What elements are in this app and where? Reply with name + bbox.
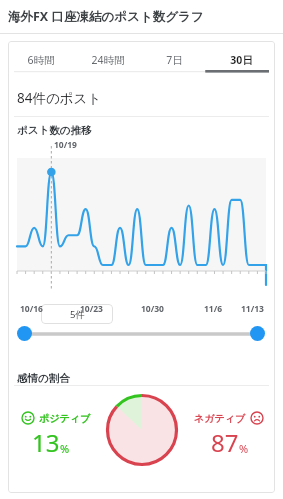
staticText: % [60, 441, 70, 456]
button[interactable]: 7日 [141, 41, 208, 79]
staticText: 10/30 [141, 303, 164, 315]
staticText: 6時間 [27, 53, 55, 67]
other: Positive [21, 411, 35, 425]
staticText: 海外FX 口座凍結のポスト数グラフ [8, 8, 204, 25]
staticText: 24時間 [91, 53, 125, 67]
button[interactable]: 6時間 [8, 41, 74, 79]
staticText: ポジティブ [39, 412, 91, 425]
button[interactable]: Range end [250, 326, 265, 341]
button[interactable]: 24時間 [74, 41, 141, 79]
staticText: ポスト数の推移 [17, 124, 92, 137]
other: Negative [250, 411, 264, 425]
staticText: ネガティブ [194, 412, 246, 425]
staticText: 10/19 [54, 139, 77, 151]
staticText: 11/6 [204, 303, 223, 315]
staticText: 30日 [230, 53, 253, 67]
staticText: 感情の割合 [17, 372, 70, 385]
staticText: 10/16 [20, 303, 43, 315]
staticText: 11/13 [241, 303, 264, 315]
staticText: % [239, 441, 249, 456]
staticText: 87 [211, 426, 239, 459]
staticText: 10/23 [80, 303, 103, 315]
button[interactable]: 30日 [208, 41, 275, 79]
staticText: 13 [32, 426, 60, 459]
button[interactable]: Range start [17, 326, 32, 341]
staticText: 5件 [70, 308, 85, 321]
staticText: 7日 [166, 53, 183, 67]
staticText: 84件のポスト [17, 89, 102, 107]
